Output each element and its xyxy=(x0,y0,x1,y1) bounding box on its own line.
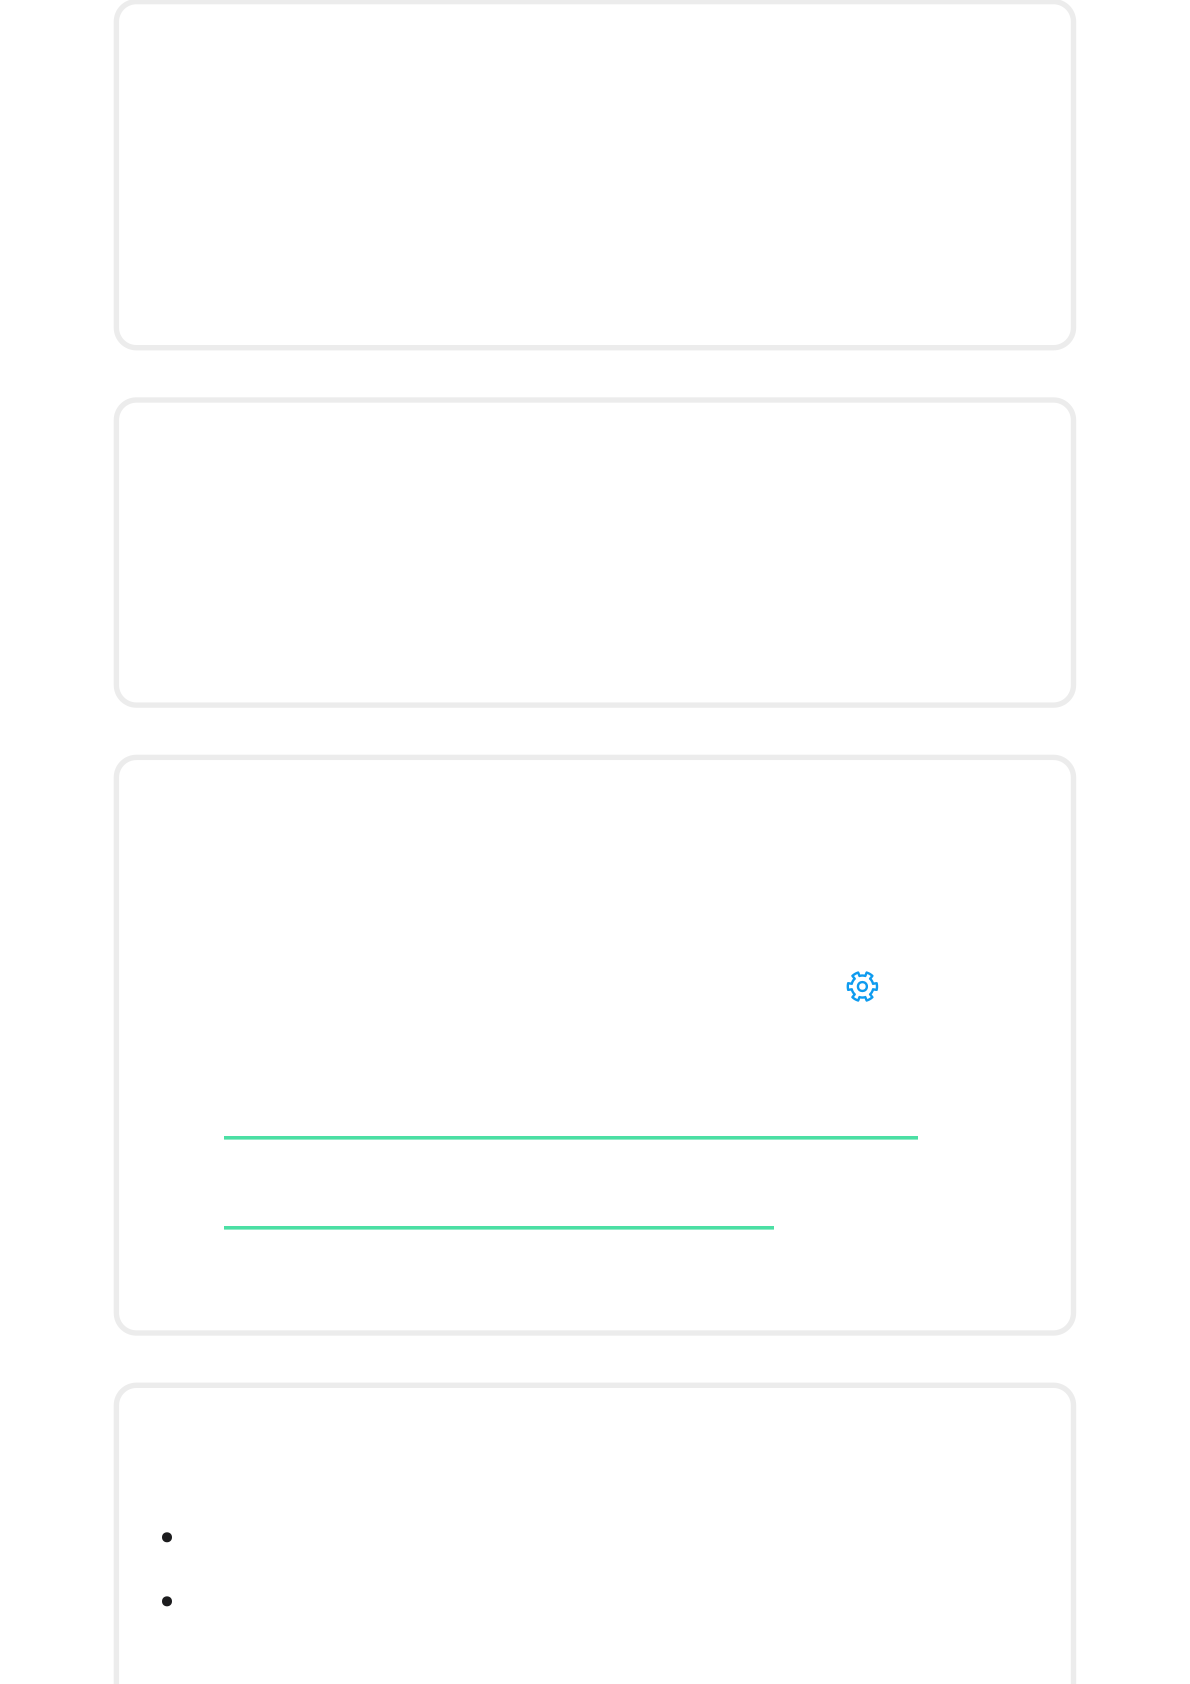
staticText: Manage connected accounts and permission… xyxy=(224,1070,760,1162)
button[interactable]: Review the data retention policy xyxy=(224,1186,774,1230)
button[interactable]: Settings xyxy=(846,970,878,1002)
staticText: Review the data retention policy xyxy=(224,1183,747,1229)
button[interactable]: Manage connected accounts and permission… xyxy=(224,1096,918,1140)
